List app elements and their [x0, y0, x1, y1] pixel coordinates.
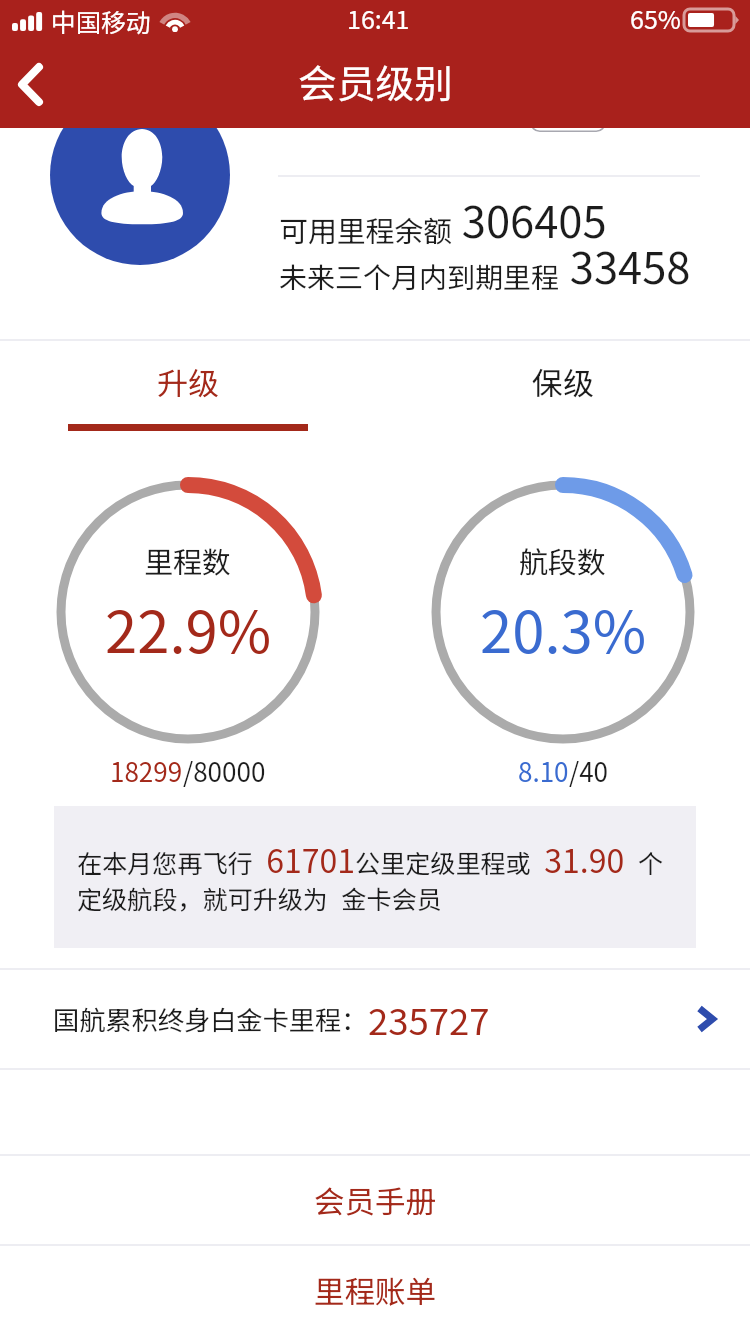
staticText: 中国移动	[51, 3, 152, 39]
button[interactable]: 里程账单	[0, 1246, 750, 1334]
staticText: 235727	[368, 993, 490, 1046]
staticText: 会员手册	[314, 1178, 436, 1222]
staticText: 8.10	[518, 752, 569, 790]
staticText: 16:41	[347, 0, 410, 36]
staticText: 306405	[452, 188, 607, 251]
staticText: 保级	[532, 359, 594, 404]
staticText: 22.9%	[105, 586, 272, 670]
button[interactable]: Back	[0, 54, 60, 114]
staticText: 可用里程余额	[279, 209, 452, 251]
staticText: 里程账单	[314, 1268, 436, 1312]
staticText: /40	[569, 752, 609, 790]
staticText: 33458	[560, 234, 691, 297]
staticText: 里程数	[144, 539, 232, 581]
button[interactable]: 会员手册	[0, 1156, 750, 1244]
button[interactable]: 升级	[0, 341, 375, 436]
staticText: 在本月您再飞行 61701公里定级里程或 31.90 个 定级航段，就可升级为 …	[77, 836, 692, 918]
button[interactable]: 国航累积终身白金卡里程：	[0, 970, 750, 1068]
staticText: /80000	[183, 752, 266, 790]
staticText: 20.3%	[480, 586, 647, 670]
staticText: 未来三个月内到期里程	[279, 256, 560, 297]
staticText: 航段数	[519, 539, 607, 581]
staticText: 升级	[157, 359, 219, 404]
staticText: 65%	[630, 0, 681, 36]
staticText: 国航累积终身白金卡里程：	[53, 1000, 368, 1038]
staticText: 18299	[110, 752, 183, 790]
button[interactable]: 保级	[375, 341, 750, 436]
staticText: 会员级别	[298, 53, 453, 109]
